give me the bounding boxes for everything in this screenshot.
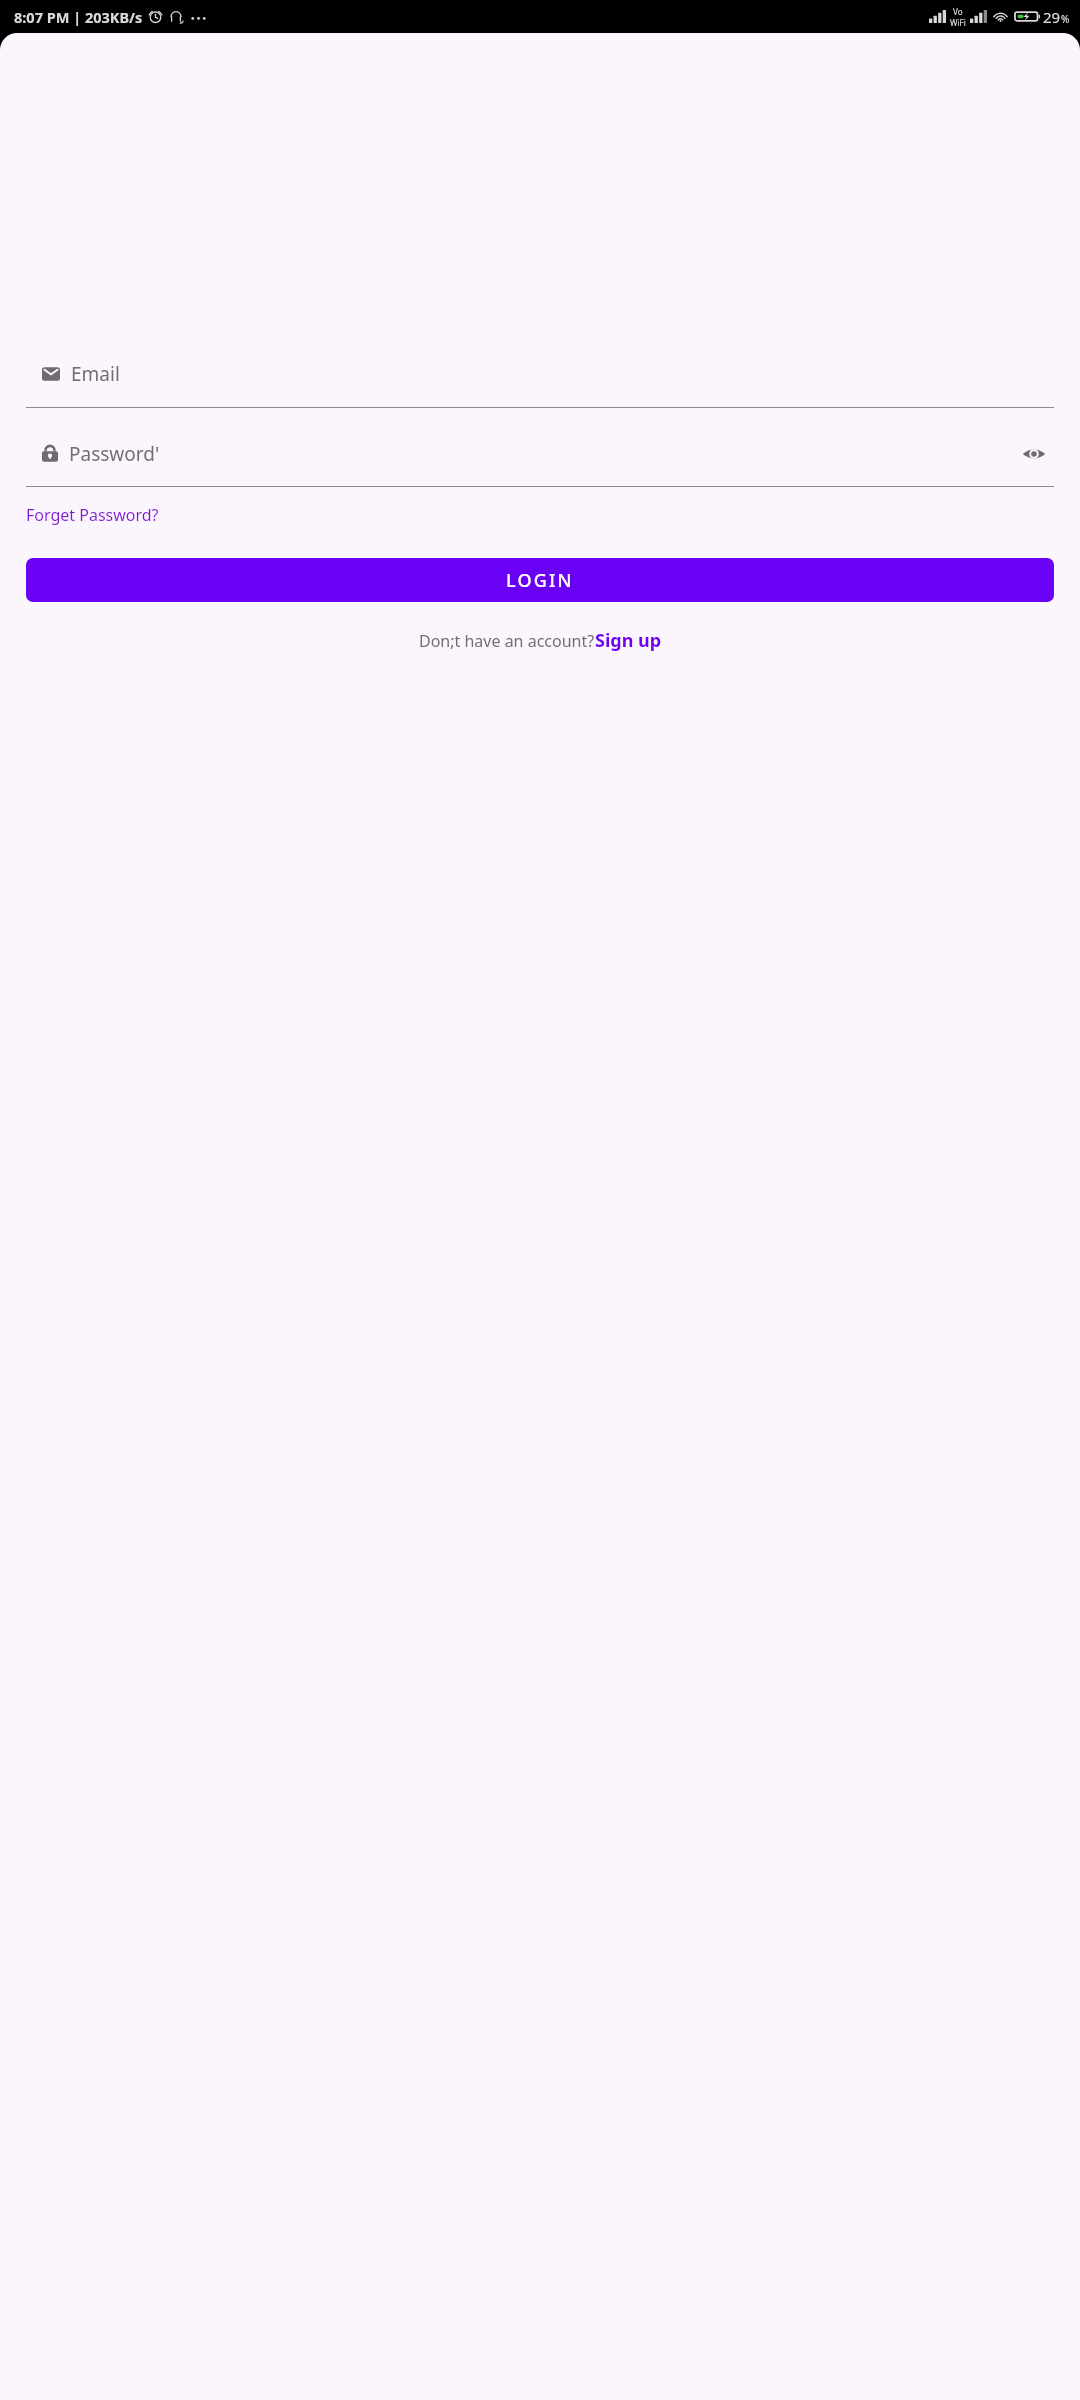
staticText: LOGIN	[506, 568, 574, 593]
staticText: Vo	[953, 6, 963, 17]
staticText: Sign up	[595, 628, 662, 653]
staticText: Don;t have an account?	[419, 630, 595, 652]
button[interactable]: Password'	[26, 432, 1054, 475]
button[interactable]: LOGIN	[26, 558, 1054, 602]
staticText: Password'	[69, 441, 160, 467]
button[interactable]: Email	[26, 352, 1054, 395]
staticText: Forget Password?	[26, 504, 159, 526]
staticText: 29	[1043, 7, 1061, 27]
staticText: Email	[71, 361, 120, 387]
staticText: %	[1061, 12, 1070, 26]
staticText: WiFi	[950, 17, 966, 28]
staticText: 8:07 PM | 203KB/s	[14, 7, 143, 27]
button[interactable]: Forget Password?	[26, 500, 159, 530]
button[interactable]: Don;t have an account?	[419, 624, 662, 657]
button[interactable]: Show password	[1014, 434, 1054, 474]
